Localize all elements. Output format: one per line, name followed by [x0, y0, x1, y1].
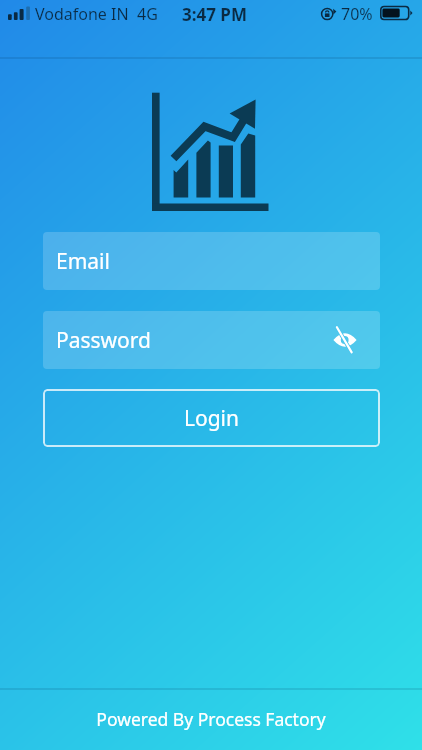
staticText: 70% [341, 3, 373, 25]
button[interactable]: Password [43, 311, 380, 369]
staticText: Powered By Process Factory [96, 707, 326, 731]
staticText: Vodafone IN [35, 3, 129, 25]
staticText: Password [56, 326, 151, 355]
staticText: Login [184, 404, 240, 433]
button[interactable]: Email [43, 232, 380, 290]
staticText: 4G [137, 3, 158, 25]
staticText: 3:47 PM [182, 3, 247, 26]
button[interactable]: Show password [324, 319, 366, 361]
staticText: Email [56, 247, 110, 276]
button[interactable]: Login [43, 389, 380, 447]
